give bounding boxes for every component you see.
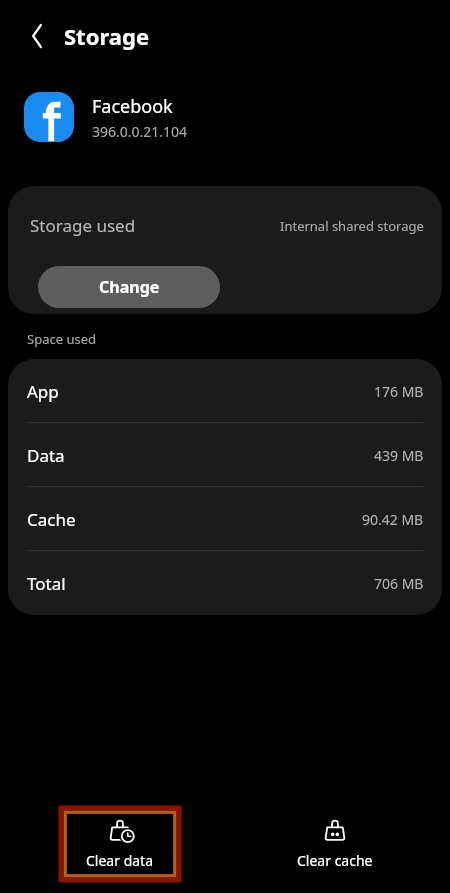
staticText: Internal shared storage [280, 217, 424, 235]
staticText: Clear data [86, 851, 154, 870]
staticText: 176 MB [374, 382, 424, 401]
button[interactable]: Back [18, 17, 56, 55]
button[interactable]: Clear data [61, 808, 179, 880]
staticText: Data [27, 444, 65, 467]
staticText: Change [99, 276, 160, 298]
staticText: Storage [64, 21, 150, 51]
staticText: Storage used [30, 214, 136, 237]
staticText: Space used [27, 330, 96, 348]
staticText: App [27, 380, 59, 403]
button[interactable]: Data [8, 423, 442, 487]
staticText: 90.42 MB [362, 510, 424, 529]
staticText: Facebook [92, 94, 173, 119]
staticText: 439 MB [374, 446, 424, 465]
staticText: Total [27, 572, 66, 595]
staticText: Clear cache [297, 851, 373, 870]
staticText: Cache [27, 508, 76, 531]
button[interactable]: Cache [8, 487, 442, 551]
button[interactable]: Total [8, 551, 442, 615]
button[interactable]: App [8, 359, 442, 423]
button[interactable]: Change [38, 266, 220, 308]
button[interactable]: Clear cache [276, 808, 394, 880]
staticText: 396.0.0.21.104 [92, 122, 188, 141]
staticText: 706 MB [374, 574, 424, 593]
